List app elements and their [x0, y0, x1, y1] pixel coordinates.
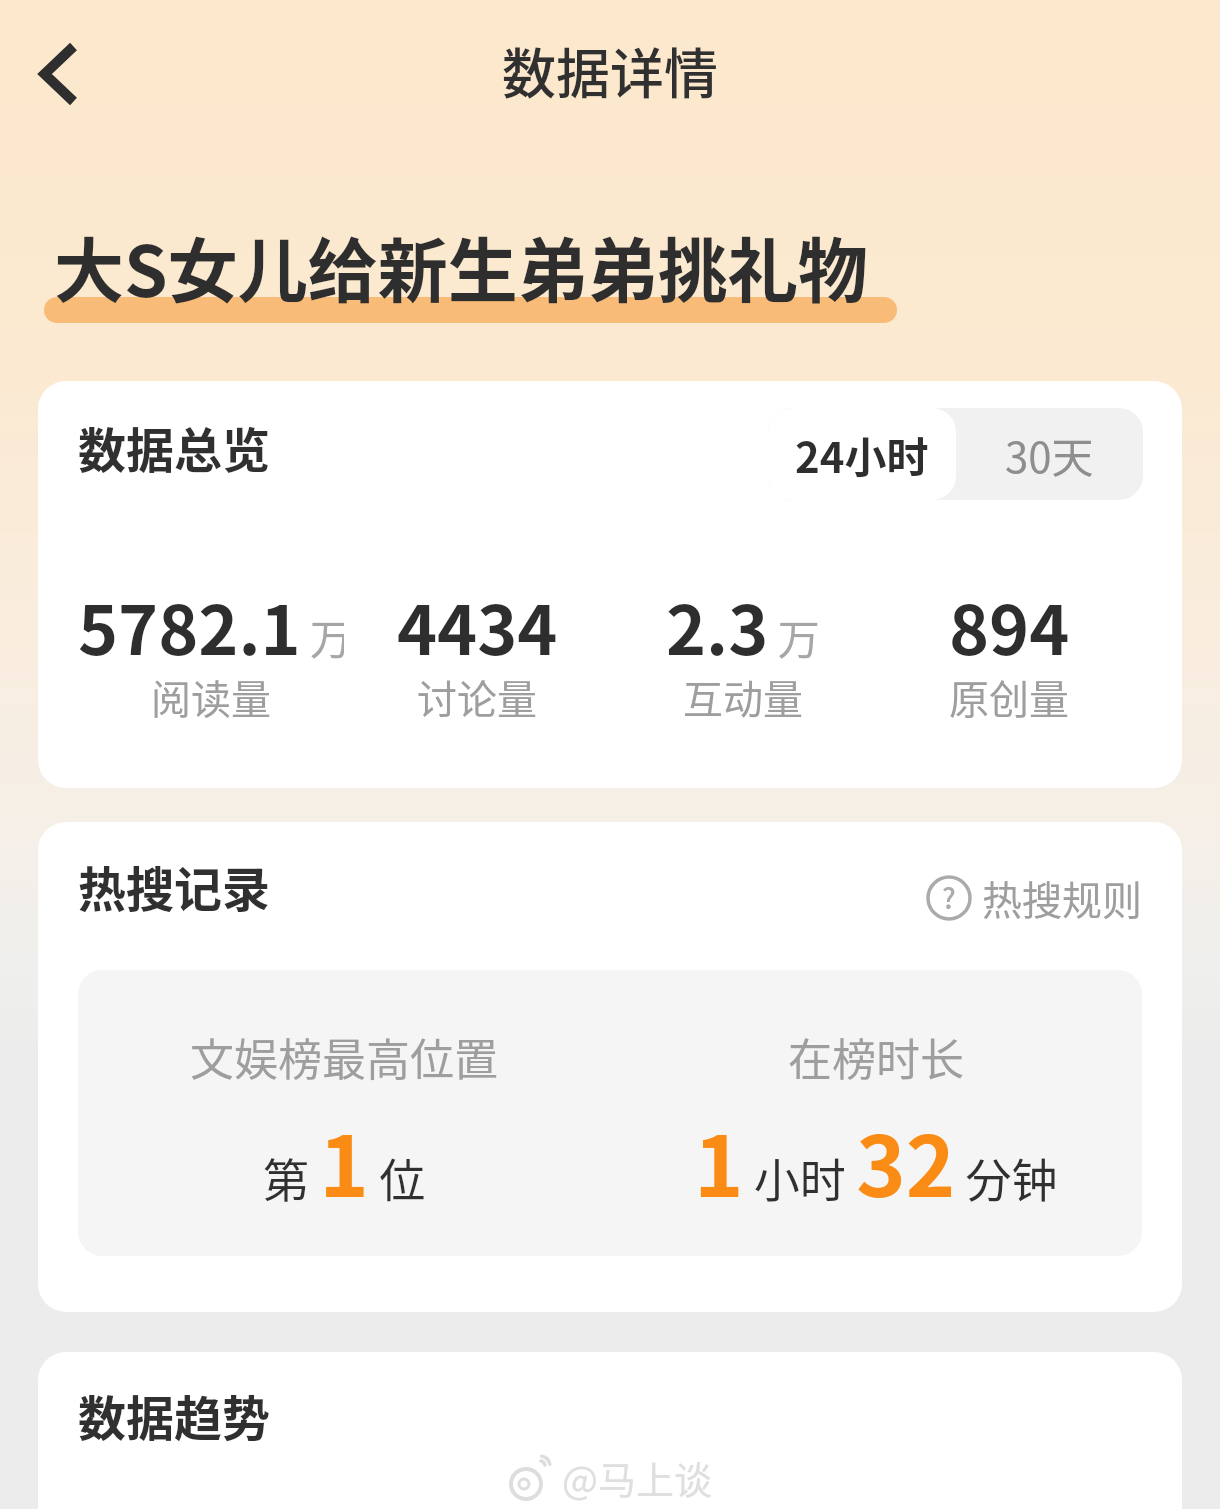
button[interactable]: 30天: [956, 408, 1143, 500]
staticText: 1 小时 32 分钟: [694, 1100, 1058, 1222]
staticText: 讨论量: [417, 668, 537, 726]
button[interactable]: ?: [926, 869, 1142, 927]
staticText: 894: [949, 576, 1070, 674]
staticText: 热搜规则: [982, 869, 1142, 927]
staticText: 第 1 位: [263, 1100, 426, 1222]
staticText: 5782.1 万: [78, 576, 344, 674]
staticText: 2.3 万: [666, 576, 820, 674]
staticText: 数据总览: [78, 412, 271, 482]
staticText: 热搜记录: [78, 851, 271, 921]
staticText: 在榜时长: [788, 1025, 964, 1089]
button[interactable]: [24, 28, 94, 120]
staticText: 文娱榜最高位置: [190, 1025, 498, 1089]
staticText: 数据趋势: [78, 1380, 271, 1450]
staticText: @马上谈: [562, 1450, 712, 1505]
staticText: 原创量: [949, 668, 1069, 726]
staticText: ?: [942, 877, 956, 918]
staticText: 4434: [397, 576, 558, 674]
staticText: 24小时: [795, 424, 929, 485]
staticText: 30天: [1005, 424, 1094, 485]
staticText: 大S女儿给新生弟弟挑礼物: [54, 216, 868, 317]
staticText: 数据详情: [0, 31, 1220, 109]
staticText: 阅读量: [151, 668, 271, 726]
button[interactable]: 24小时: [768, 408, 956, 500]
staticText: 互动量: [683, 668, 803, 726]
